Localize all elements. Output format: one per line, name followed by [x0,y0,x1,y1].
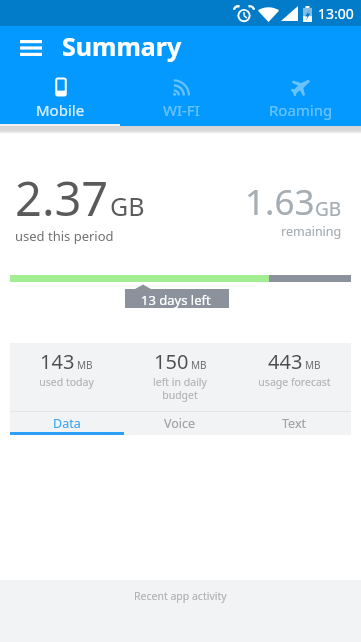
button[interactable]: Voice [123,412,237,435]
button[interactable]: 143 [10,348,123,389]
staticText: usage forecast [258,375,331,389]
staticText: remaining [281,223,342,240]
staticText: Data [53,415,81,432]
staticText: MB [305,358,321,372]
staticText: MB [77,358,93,372]
staticText: used this period [15,227,114,245]
button[interactable]: WI-FI [121,72,241,126]
staticText: 443 [268,348,303,375]
staticText: Voice [164,415,196,432]
button[interactable]: Open navigation menu [5,26,56,70]
staticText: WI-FI [163,100,200,120]
button[interactable]: Text [237,412,351,435]
staticText: left in daily budget [153,375,207,402]
staticText: GB [110,189,145,223]
button[interactable]: Roaming [241,72,361,126]
button[interactable]: Mobile [0,72,121,126]
staticText: Text [282,415,307,432]
staticText: 13:00 [318,4,354,23]
staticText: Recent app activity [134,589,227,603]
staticText: GB [315,196,342,222]
button[interactable]: Recent app activity [0,580,361,642]
button[interactable]: 150 [123,348,237,402]
staticText: 143 [40,348,75,375]
staticText: 2.37 [15,166,109,230]
staticText: used today [39,375,94,389]
staticText: Roaming [269,100,333,120]
staticText: MB [191,358,207,372]
staticText: Mobile [36,100,85,120]
staticText: 150 [154,348,189,375]
staticText: 13 days left [141,291,211,309]
staticText: Summary [62,29,182,63]
button[interactable]: Data [10,412,123,435]
staticText: 1.63 [245,178,315,226]
button[interactable]: 443 [237,348,351,389]
